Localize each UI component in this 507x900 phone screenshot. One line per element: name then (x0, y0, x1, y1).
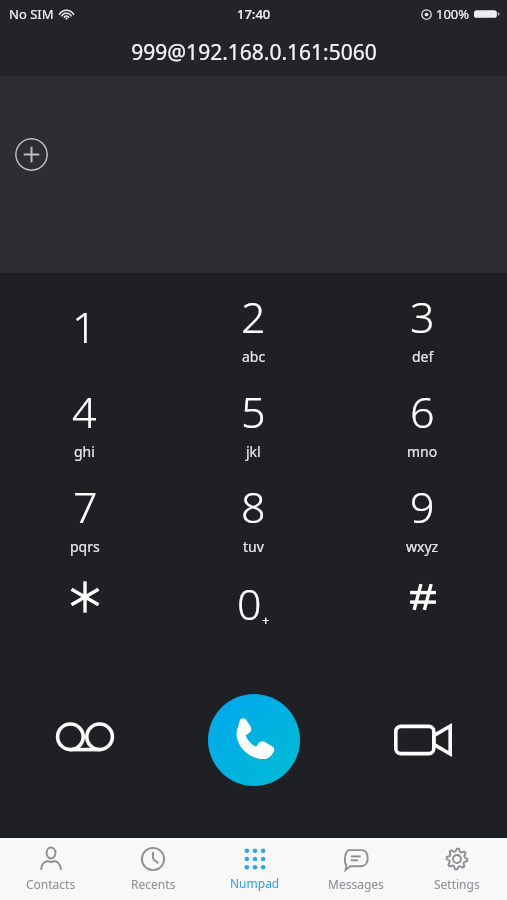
staticText: Contacts (26, 876, 76, 892)
button[interactable]: 5 (169, 374, 338, 469)
staticText: 100% (436, 5, 470, 23)
button[interactable]: Voicemail (0, 695, 169, 785)
button[interactable]: Numpad (204, 838, 305, 900)
staticText: def (412, 347, 434, 366)
button[interactable]: 9 (338, 469, 507, 564)
staticText: 9 (410, 477, 435, 536)
staticText: 0 (237, 574, 262, 633)
staticText: jkl (246, 442, 261, 461)
button[interactable] (0, 564, 169, 642)
staticText: tuv (243, 537, 264, 556)
staticText: 8 (241, 477, 266, 536)
staticText: ghi (74, 442, 95, 461)
button[interactable]: Contacts (0, 838, 102, 900)
button[interactable]: Video call (338, 695, 507, 785)
staticText: + (262, 611, 270, 629)
button[interactable]: 4 (0, 374, 169, 469)
button[interactable]: Settings (406, 838, 507, 900)
staticText: Messages (328, 876, 384, 892)
button[interactable]: Messages (305, 838, 406, 900)
button[interactable] (338, 564, 507, 642)
staticText: 999@192.168.0.161:5060 (131, 38, 377, 67)
button[interactable]: Add contact (15, 138, 48, 171)
button[interactable]: Recents (102, 838, 204, 900)
button[interactable]: Call (208, 694, 300, 786)
button[interactable]: 2 (169, 279, 338, 374)
staticText: 6 (410, 382, 435, 441)
staticText: 3 (410, 287, 435, 346)
staticText: 5 (241, 382, 266, 441)
staticText: mno (407, 442, 438, 461)
staticText: No SIM (9, 5, 54, 23)
button[interactable]: 3 (338, 279, 507, 374)
button[interactable]: 8 (169, 469, 338, 564)
staticText: pqrs (70, 537, 100, 556)
staticText: Settings (434, 876, 480, 892)
button[interactable]: 0 (169, 564, 338, 642)
staticText: 17:40 (237, 5, 271, 23)
staticText: abc (242, 347, 266, 366)
staticText: 1 (72, 297, 97, 356)
staticText: wxyz (406, 537, 439, 556)
button[interactable]: 1 (0, 279, 169, 374)
staticText: Recents (131, 876, 176, 892)
staticText: 7 (73, 477, 98, 536)
staticText: 2 (241, 287, 266, 346)
button[interactable]: 7 (0, 469, 169, 564)
button[interactable]: 6 (338, 374, 507, 469)
staticText: 4 (72, 382, 97, 441)
staticText: Numpad (230, 875, 280, 891)
